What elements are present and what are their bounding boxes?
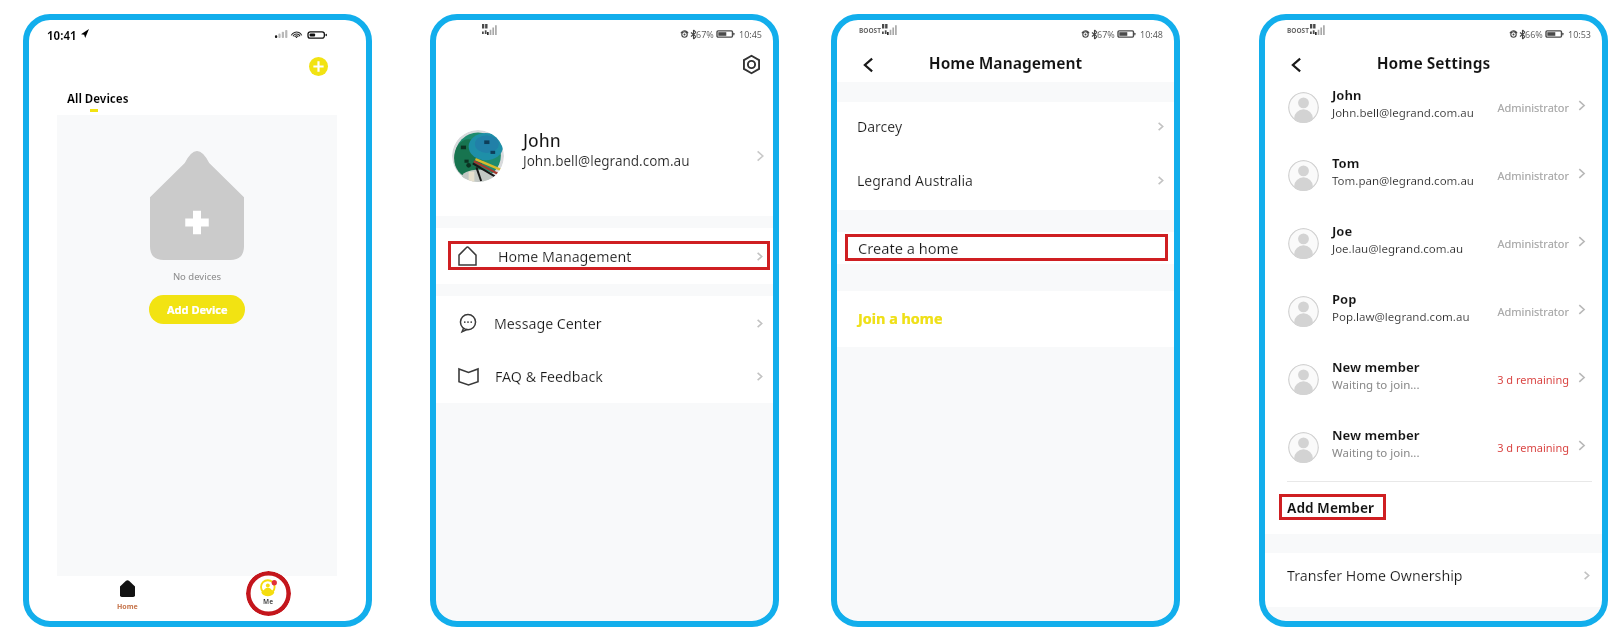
- staticText: New member: [1332, 358, 1420, 376]
- staticText: Join a home: [858, 309, 943, 329]
- button[interactable]: Message Center: [436, 296, 773, 350]
- staticText: Administrator: [1265, 304, 1569, 319]
- staticText: Administrator: [1265, 236, 1569, 251]
- staticText: Joe.lau@legrand.com.au: [1332, 241, 1464, 257]
- button[interactable]: Back: [858, 55, 878, 75]
- button[interactable]: Add device: [309, 57, 328, 76]
- staticText: John.bell@legrand.com.au: [1332, 105, 1474, 121]
- staticText: John.bell@legrand.com.au: [523, 152, 690, 170]
- staticText: Darcey: [857, 117, 903, 136]
- button[interactable]: Add Device: [149, 295, 245, 324]
- button[interactable]: Join a home: [837, 291, 1174, 347]
- button[interactable]: John: [1265, 73, 1602, 141]
- staticText: Home Management: [837, 52, 1174, 73]
- staticText: Administrator: [1265, 168, 1569, 183]
- staticText: Home: [117, 602, 138, 612]
- button[interactable]: Legrand Australia: [837, 153, 1174, 207]
- staticText: Me: [263, 597, 274, 606]
- staticText: Waiting to join...: [1332, 445, 1420, 461]
- staticText: Add Device: [167, 302, 228, 317]
- staticText: Tom.pan@legrand.com.au: [1332, 173, 1474, 189]
- staticText: 10:41: [47, 28, 77, 44]
- button[interactable]: Back: [1286, 55, 1306, 75]
- button[interactable]: FAQ & Feedback: [436, 350, 773, 403]
- button[interactable]: Tom: [1265, 141, 1602, 209]
- staticText: Message Center: [494, 314, 602, 333]
- staticText: Pop.law@legrand.com.au: [1332, 309, 1470, 325]
- button[interactable]: Darcey: [837, 99, 1174, 153]
- staticText: 10:45: [739, 28, 763, 40]
- staticText: Pop: [1332, 290, 1357, 308]
- button[interactable]: Account profile: [436, 120, 773, 192]
- staticText: 10:48: [1140, 28, 1164, 40]
- button[interactable]: Home Management: [436, 228, 773, 284]
- staticText: Add Member: [1287, 498, 1375, 517]
- staticText: Waiting to join...: [1332, 377, 1420, 393]
- staticText: 3 d remaining: [1265, 372, 1569, 387]
- staticText: Administrator: [1265, 100, 1569, 115]
- staticText: No devices: [57, 270, 337, 283]
- button[interactable]: New member: [1265, 413, 1602, 481]
- button[interactable]: Settings: [742, 55, 761, 74]
- staticText: BOOST: [1287, 26, 1309, 35]
- staticText: Transfer Home Ownership: [1287, 566, 1463, 585]
- staticText: John: [523, 128, 561, 152]
- staticText: 66%: [1525, 28, 1543, 40]
- staticText: BOOST: [859, 26, 881, 35]
- button[interactable]: Joe: [1265, 209, 1602, 277]
- staticText: 3 d remaining: [1265, 440, 1569, 455]
- button[interactable]: Me: [246, 571, 291, 616]
- staticText: Home Settings: [1265, 52, 1602, 73]
- staticText: John: [1332, 86, 1362, 104]
- button[interactable]: New member: [1265, 345, 1602, 413]
- staticText: 67%: [1097, 28, 1115, 40]
- staticText: 67%: [696, 28, 714, 40]
- staticText: Joe: [1332, 222, 1353, 240]
- staticText: Tom: [1332, 154, 1360, 172]
- button[interactable]: Home tab: [112, 580, 142, 612]
- staticText: Create a home: [858, 238, 959, 258]
- staticText: All Devices: [67, 91, 129, 107]
- staticText: Legrand Australia: [857, 171, 973, 190]
- button[interactable]: Transfer Home Ownership: [1265, 553, 1602, 597]
- button[interactable]: Pop: [1265, 277, 1602, 345]
- staticText: 10:53: [1568, 28, 1592, 40]
- staticText: New member: [1332, 426, 1420, 444]
- button[interactable]: Add Member: [1265, 489, 1602, 525]
- staticText: FAQ & Feedback: [495, 367, 603, 386]
- staticText: Home Management: [498, 247, 632, 266]
- button[interactable]: Create a home: [837, 232, 1174, 264]
